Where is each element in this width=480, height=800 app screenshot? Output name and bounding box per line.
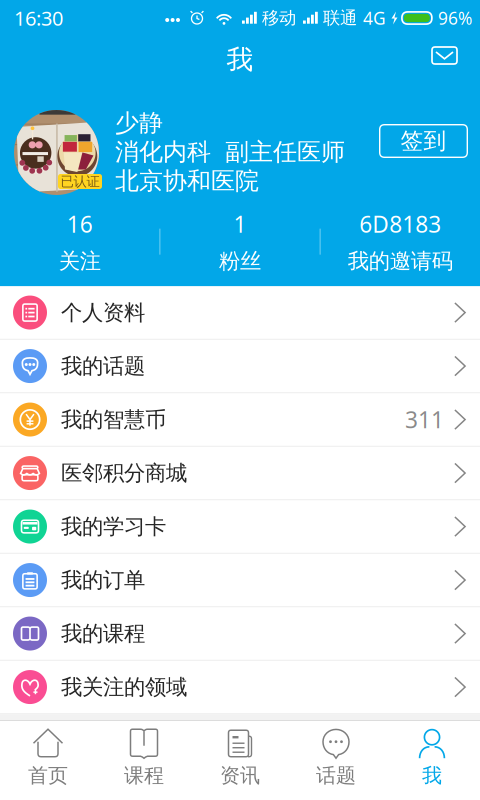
staticText: 我 xyxy=(422,763,442,788)
staticText: 首页 xyxy=(28,763,68,788)
staticText: 粉丝 xyxy=(219,248,261,274)
staticText: 话题 xyxy=(316,763,356,788)
staticText: 我的课程 xyxy=(61,620,145,647)
button[interactable]: 话题 xyxy=(288,721,384,800)
button[interactable]: 医邻积分商城 xyxy=(0,447,480,500)
staticText: 已认证 xyxy=(60,173,99,190)
button[interactable]: 签到 xyxy=(379,124,468,158)
button[interactable]: 我的学习卡 xyxy=(0,500,480,554)
staticText: 6D8183 xyxy=(359,209,441,239)
staticText: 医邻积分商城 xyxy=(61,460,187,486)
staticText: 资讯 xyxy=(220,763,260,788)
staticText: 我的学习卡 xyxy=(61,513,166,540)
button[interactable]: 我的话题 xyxy=(0,340,480,393)
staticText: 我的订单 xyxy=(61,567,145,593)
button[interactable]: 我 xyxy=(384,721,480,800)
staticText: 消化内科 副主任医师 xyxy=(115,137,345,167)
button[interactable]: 消息 xyxy=(421,39,468,80)
button[interactable]: 我关注的领域 xyxy=(0,661,480,714)
staticText: 4G xyxy=(363,6,386,29)
staticText: 签到 xyxy=(400,127,446,155)
button[interactable]: 我的课程 xyxy=(0,607,480,661)
button[interactable]: 个人资料 xyxy=(0,286,480,340)
staticText: 96% xyxy=(438,6,472,29)
staticText: 我关注的领域 xyxy=(61,674,187,700)
button[interactable]: 我的智慧币 xyxy=(0,393,480,447)
staticText: 个人资料 xyxy=(61,299,145,326)
staticText: 我 xyxy=(226,43,253,76)
button[interactable]: 首页 xyxy=(0,721,96,800)
staticText: 联通 xyxy=(323,7,357,29)
staticText: 16 xyxy=(67,209,93,239)
staticText: 北京协和医院 xyxy=(115,166,259,196)
staticText: 我的邀请码 xyxy=(348,248,453,274)
staticText: 关注 xyxy=(59,248,101,274)
staticText: 课程 xyxy=(124,763,164,788)
staticText: 少静 xyxy=(115,108,163,138)
button[interactable]: 我的订单 xyxy=(0,554,480,607)
staticText: 16:30 xyxy=(14,5,63,31)
staticText: 311 xyxy=(405,404,444,435)
staticText: 1 xyxy=(233,209,246,239)
staticText: 移动 xyxy=(262,7,296,29)
staticText: 我的话题 xyxy=(61,353,145,379)
staticText: 我的智慧币 xyxy=(61,406,166,433)
button[interactable]: 课程 xyxy=(96,721,192,800)
button[interactable]: 资讯 xyxy=(192,721,288,800)
